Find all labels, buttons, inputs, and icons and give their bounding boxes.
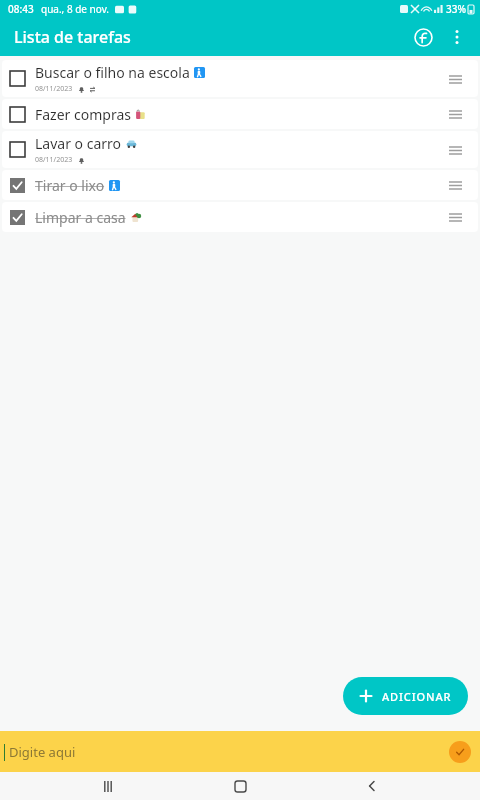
button[interactable]: Mais opções [440, 20, 474, 54]
button[interactable]: Lavar o carro [2, 131, 478, 168]
staticText: Tirar o lixo [35, 176, 105, 195]
button[interactable]: Fazer compras [2, 99, 478, 129]
staticText: Buscar o filho na escola [35, 63, 190, 82]
staticText: 33% [446, 2, 466, 16]
staticText: Digite aqui [9, 743, 76, 761]
button[interactable]: Facebook [406, 20, 440, 54]
button[interactable]: Início [216, 772, 264, 800]
staticText: 08/11/2023 [35, 84, 73, 94]
button[interactable]: Reordenar [440, 135, 470, 165]
button[interactable]: Voltar [348, 772, 396, 800]
button[interactable]: Buscar o filho na escola [2, 60, 478, 97]
button[interactable]: Reordenar [440, 99, 470, 129]
staticText: Lista de tarefas [14, 26, 131, 48]
button[interactable]: Digite aqui [0, 731, 480, 772]
button[interactable]: Confirmar [449, 741, 471, 763]
button[interactable]: Tirar o lixo [2, 170, 478, 200]
staticText: qua., 8 de nov. [41, 2, 109, 16]
staticText: 08/11/2023 [35, 155, 73, 165]
button[interactable]: Reordenar [440, 64, 470, 94]
button[interactable]: Limpar a casa [2, 202, 478, 232]
button[interactable]: Reordenar [440, 202, 470, 232]
staticText: Limpar a casa [35, 208, 126, 227]
staticText: ADICIONAR [382, 689, 452, 704]
button[interactable]: Recentes [84, 772, 132, 800]
staticText: 08:43 [8, 2, 34, 16]
staticText: Lavar o carro [35, 134, 122, 153]
button[interactable]: Reordenar [440, 170, 470, 200]
staticText: Fazer compras [35, 105, 131, 124]
button[interactable]: ADICIONAR [343, 677, 468, 715]
